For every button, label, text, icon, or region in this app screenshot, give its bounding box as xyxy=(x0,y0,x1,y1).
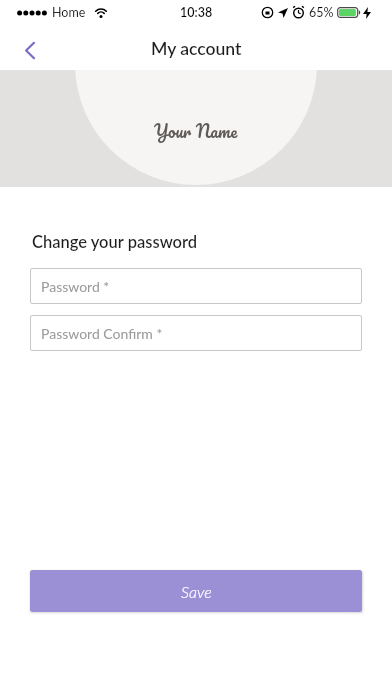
staticText: Change your password xyxy=(32,232,198,252)
staticText: 65% xyxy=(309,5,334,20)
staticText: 10:38 xyxy=(180,5,213,20)
staticText: Home xyxy=(52,5,86,20)
button[interactable] xyxy=(17,37,43,63)
staticText: My account xyxy=(151,38,242,59)
button[interactable]: Password Confirm * xyxy=(30,315,362,351)
staticText: Password Confirm * xyxy=(41,325,163,342)
staticText: Your Name xyxy=(154,117,238,146)
button[interactable]: Password * xyxy=(30,268,362,304)
button[interactable]: Save xyxy=(30,570,362,612)
staticText: Save xyxy=(181,582,212,601)
staticText: Password * xyxy=(41,278,110,295)
